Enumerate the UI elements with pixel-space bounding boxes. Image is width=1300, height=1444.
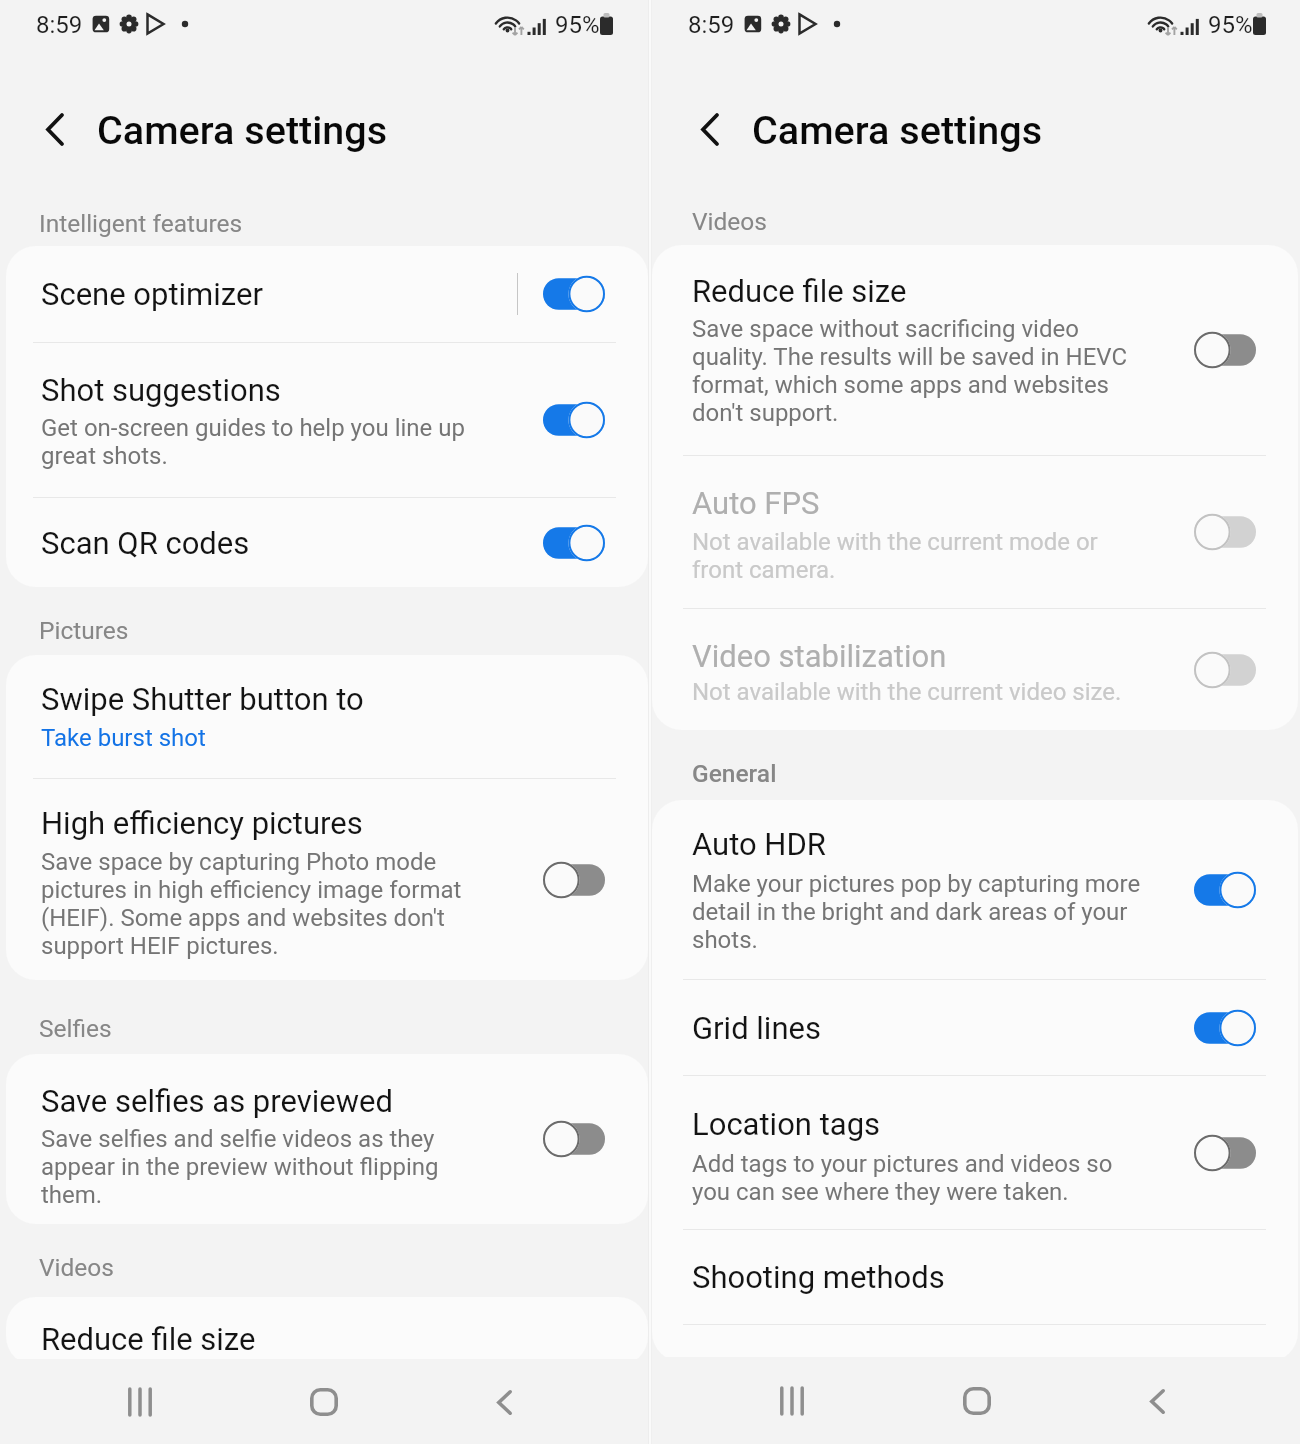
staticText: Shot suggestions	[41, 372, 281, 408]
staticText: Grid lines	[692, 1010, 821, 1046]
staticText: Pictures	[39, 616, 129, 645]
button[interactable]: Grid lines	[652, 980, 1298, 1075]
button[interactable]: Recent apps	[110, 1372, 170, 1432]
staticText: 95%	[555, 11, 600, 39]
button[interactable]: Recent apps	[762, 1371, 822, 1431]
button[interactable]: Switch off	[1194, 331, 1256, 369]
button[interactable]: Scan QR codes	[6, 498, 648, 587]
button[interactable]: Location tags	[652, 1076, 1298, 1229]
button[interactable]: Shot suggestions	[6, 343, 648, 497]
staticText: Camera settings	[97, 107, 388, 153]
staticText: Take burst shot	[41, 724, 206, 752]
button[interactable]: Auto HDR	[652, 800, 1298, 979]
staticText: Reduce file size	[41, 1321, 256, 1357]
staticText: Auto FPS	[692, 485, 820, 521]
button[interactable]: Home	[294, 1372, 354, 1432]
staticText: Videos	[692, 207, 767, 236]
staticText: Settings reminder	[692, 1353, 936, 1362]
button[interactable]: Navigate up	[27, 101, 83, 157]
staticText: Selfies	[39, 1014, 112, 1043]
button[interactable]: Auto FPS	[652, 456, 1298, 608]
button[interactable]: Shooting methods	[652, 1230, 1298, 1324]
button[interactable]: Video stabilization	[652, 609, 1298, 730]
button[interactable]: Scene optimizer	[6, 246, 648, 342]
button[interactable]: Swipe Shutter button to	[6, 655, 648, 778]
button[interactable]: Switch off	[1194, 1134, 1256, 1172]
staticText: Intelligent features	[39, 209, 243, 238]
staticText: Location tags	[692, 1106, 881, 1142]
staticText: Make your pictures pop by capturing more…	[692, 870, 1141, 954]
staticText: Shooting methods	[692, 1259, 945, 1295]
staticText: Not available with the current mode or f…	[692, 528, 1098, 584]
button[interactable]: High efficiency pictures	[6, 779, 648, 980]
button[interactable]: Navigate up	[682, 101, 738, 157]
staticText: Save selfies as previewed	[41, 1083, 393, 1119]
button[interactable]: Save selfies as previewed	[6, 1054, 648, 1224]
staticText: Not available with the current video siz…	[692, 678, 1122, 706]
staticText: Add tags to your pictures and videos so …	[692, 1150, 1113, 1206]
staticText: Swipe Shutter button to	[41, 681, 364, 717]
staticText: Reduce file size	[692, 273, 907, 309]
button[interactable]: Switch on	[543, 275, 605, 313]
button[interactable]: Switch on	[1194, 1009, 1256, 1047]
button[interactable]: Switch on	[1194, 871, 1256, 909]
staticText: Save selfies and selfie videos as they a…	[41, 1125, 439, 1209]
button[interactable]: Switch off	[1194, 651, 1256, 689]
button[interactable]: Reduce file size	[652, 245, 1298, 455]
staticText: 95%	[1208, 11, 1253, 39]
staticText: Save space by capturing Photo mode pictu…	[41, 848, 462, 960]
staticText: General	[692, 759, 777, 788]
staticText: Save space without sacrificing video qua…	[692, 315, 1128, 427]
staticText: Scan QR codes	[41, 525, 250, 561]
staticText: Scene optimizer	[41, 276, 263, 312]
staticText: 8:59	[688, 11, 735, 39]
button[interactable]: Reduce file size	[6, 1297, 648, 1366]
button[interactable]: Back	[1127, 1371, 1187, 1431]
button[interactable]: Switch off	[543, 861, 605, 899]
button[interactable]: Switch off	[543, 1120, 605, 1158]
staticText: 8:59	[36, 11, 83, 39]
button[interactable]: Switch on	[543, 524, 605, 562]
button[interactable]: Home	[947, 1371, 1007, 1431]
staticText: Auto HDR	[692, 826, 826, 862]
staticText: Camera settings	[752, 107, 1043, 153]
button[interactable]: Switch on	[543, 401, 605, 439]
staticText: Get on-screen guides to help you line up…	[41, 414, 465, 470]
staticText: Videos	[39, 1253, 114, 1282]
staticText: Video stabilization	[692, 638, 947, 674]
button[interactable]: Switch off	[1194, 513, 1256, 551]
staticText: High efficiency pictures	[41, 805, 363, 841]
button[interactable]: Back	[474, 1372, 534, 1432]
